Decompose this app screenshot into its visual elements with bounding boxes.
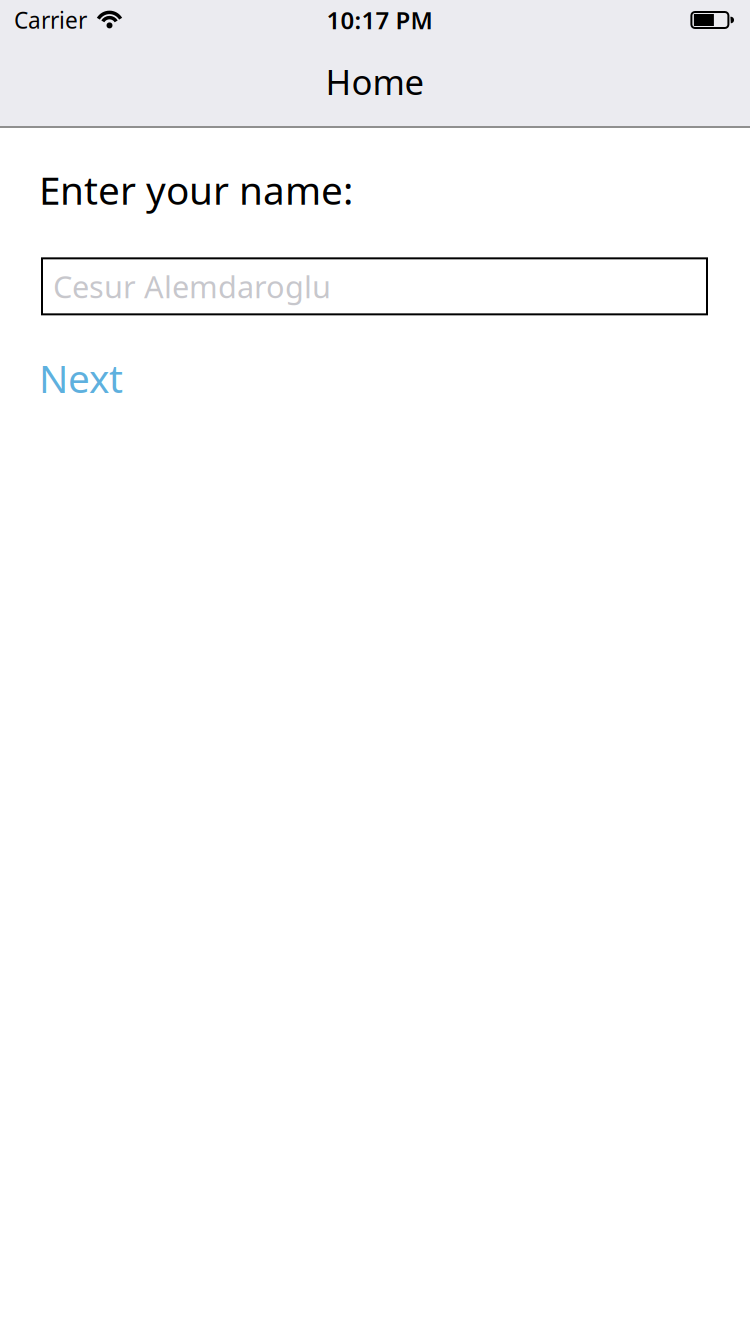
textField[interactable]: Cesur Alemdaroglu	[41, 257, 708, 315]
staticText: 10:17 PM	[326, 4, 432, 36]
staticText: Carrier	[14, 5, 87, 35]
button[interactable]: Next	[39, 352, 123, 404]
staticText: Next	[39, 352, 123, 404]
staticText: Cesur Alemdaroglu	[53, 266, 331, 307]
staticText: Enter your name:	[39, 164, 353, 215]
staticText: Home	[325, 58, 424, 104]
